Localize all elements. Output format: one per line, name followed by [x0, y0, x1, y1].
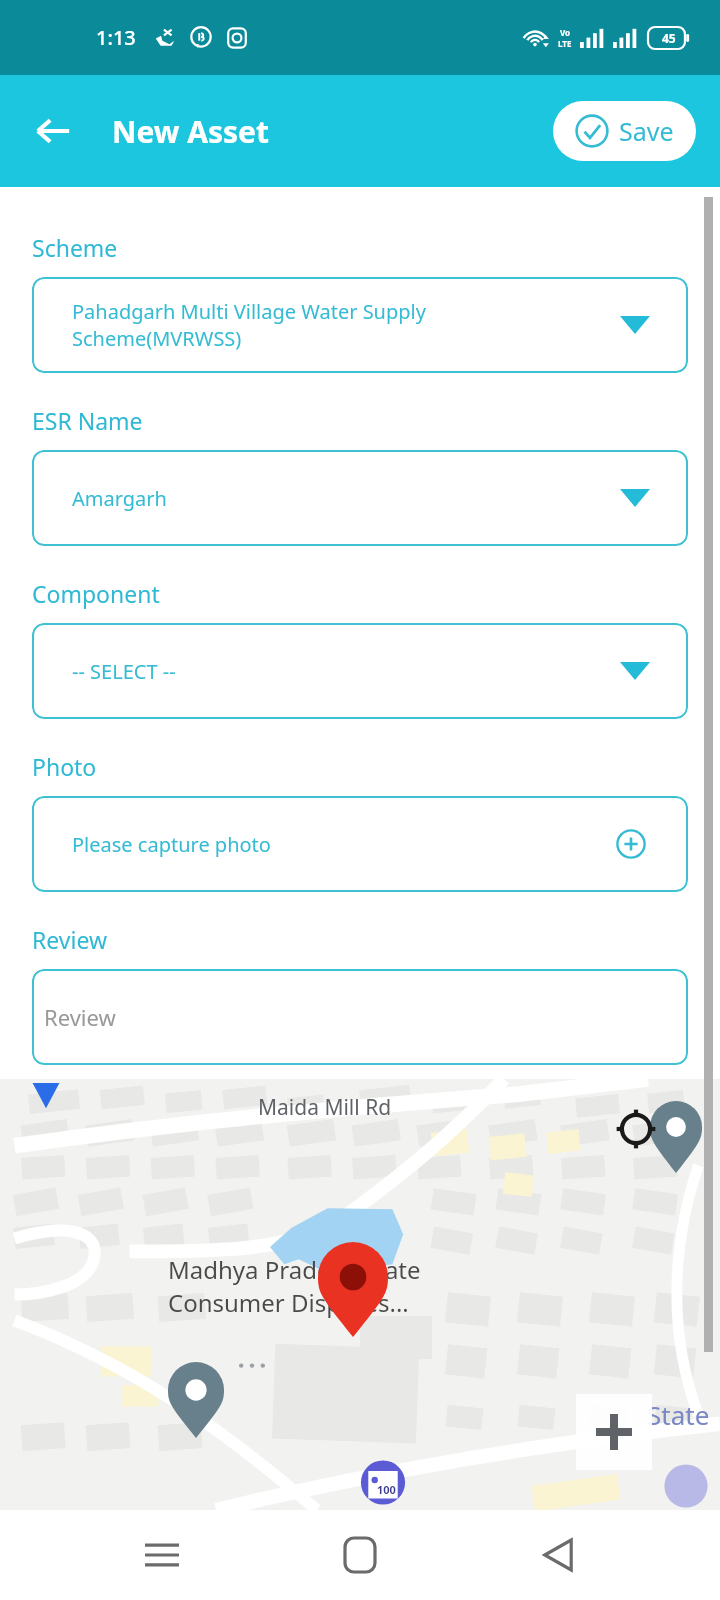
other: My location: [614, 1107, 658, 1151]
staticText: Review: [44, 1002, 116, 1032]
button[interactable]: Back: [22, 100, 84, 162]
staticText: Scheme: [32, 232, 118, 263]
button[interactable]: Back: [522, 1519, 594, 1591]
button[interactable]: -- SELECT --: [32, 623, 688, 719]
staticText: 45: [662, 30, 676, 46]
staticText: Pahadgarh Multi Village Water Supply Sch…: [72, 298, 426, 352]
button[interactable]: Zoom in: [576, 1394, 652, 1470]
staticText: Component: [32, 578, 160, 609]
staticText: Vo: [560, 27, 571, 38]
staticText: New Asset: [112, 111, 269, 152]
button[interactable]: Home: [324, 1519, 396, 1591]
button[interactable]: Save: [553, 101, 696, 161]
button[interactable]: Recent apps: [126, 1519, 198, 1591]
staticText: 100: [377, 1482, 396, 1497]
staticText: State: [647, 1397, 710, 1432]
button[interactable]: Amargarh: [32, 450, 688, 546]
staticText: Madhya Pradesh State Consumer Disputes..…: [168, 1253, 421, 1319]
staticText: 1:13: [96, 24, 136, 51]
staticText: Photo: [32, 751, 97, 782]
button[interactable]: Please capture photo: [32, 796, 688, 892]
staticText: Amargarh: [72, 485, 167, 512]
staticText: LTE: [558, 38, 572, 49]
button[interactable]: Review: [32, 969, 688, 1065]
staticText: Save: [619, 114, 674, 148]
staticText: ESR Name: [32, 405, 143, 436]
staticText: Please capture photo: [72, 831, 271, 858]
staticText: -- SELECT --: [72, 658, 176, 685]
staticText: Maida Mill Rd: [258, 1093, 392, 1122]
button[interactable]: Pahadgarh Multi Village Water Supply Sch…: [32, 277, 688, 373]
staticText: Review: [32, 924, 108, 955]
